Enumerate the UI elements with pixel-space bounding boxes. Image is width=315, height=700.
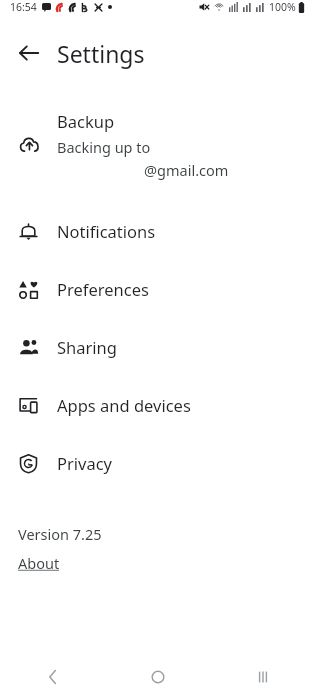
button[interactable]: About: [18, 553, 60, 573]
button[interactable]: Recent apps: [210, 654, 315, 700]
staticText: 16:54: [10, 0, 37, 14]
staticText: Preferences: [57, 278, 149, 300]
button[interactable]: Back: [0, 24, 57, 82]
button[interactable]: Sharing: [0, 318, 315, 376]
staticText: Version 7.25: [18, 524, 102, 544]
staticText: Backup: [57, 110, 115, 132]
staticText: Privacy: [57, 452, 113, 474]
staticText: @gmail.com: [144, 160, 229, 180]
staticText: Sharing: [57, 336, 117, 358]
button[interactable]: Back: [0, 654, 105, 700]
button[interactable]: Notifications: [0, 202, 315, 260]
staticText: 100%: [269, 0, 296, 14]
staticText: Notifications: [57, 220, 156, 242]
staticText: About: [18, 553, 60, 573]
button[interactable]: Apps and devices: [0, 376, 315, 434]
staticText: Settings: [57, 38, 145, 69]
staticText: Apps and devices: [57, 394, 191, 416]
button[interactable]: Backup: [0, 110, 315, 184]
button[interactable]: Home: [105, 654, 210, 700]
button[interactable]: Privacy: [0, 434, 315, 492]
button[interactable]: Preferences: [0, 260, 315, 318]
staticText: Backing up to: [57, 137, 151, 157]
